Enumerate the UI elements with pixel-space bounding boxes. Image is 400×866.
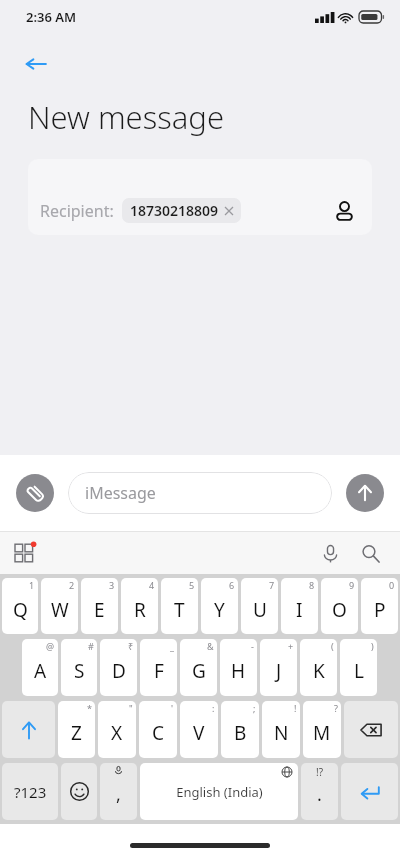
staticText: 5 (189, 579, 195, 591)
staticText: 1 (29, 579, 35, 591)
button[interactable]: ₹ (100, 639, 137, 696)
staticText: A (34, 658, 47, 684)
staticText: E (94, 597, 105, 623)
staticText: U (253, 597, 267, 623)
button[interactable]: , (100, 763, 137, 820)
button[interactable]: + (260, 639, 297, 696)
button[interactable]: & (180, 639, 217, 696)
button[interactable]: iMessage (68, 472, 332, 514)
staticText: _ (170, 640, 174, 652)
staticText: 3 (109, 579, 115, 591)
staticText: J (276, 658, 282, 684)
staticText: Recipient: (40, 200, 114, 222)
button[interactable]: 0 (361, 578, 398, 634)
button[interactable]: ' (139, 701, 177, 758)
staticText: O (332, 597, 347, 623)
button[interactable]: Back (14, 42, 58, 86)
staticText: Z (71, 720, 82, 746)
staticText: 0 (389, 579, 395, 591)
button[interactable]: ( (300, 639, 337, 696)
staticText: S (74, 658, 85, 684)
staticText: N (274, 720, 289, 746)
button[interactable]: ! (262, 701, 300, 758)
button[interactable]: - (220, 639, 257, 696)
button[interactable]: Apps (4, 532, 46, 574)
button[interactable]: 9 (321, 578, 358, 634)
staticText: 7 (269, 579, 275, 591)
button[interactable]: 3 (81, 578, 118, 634)
button[interactable]: 7 (241, 578, 278, 634)
staticText: P (374, 597, 386, 623)
button[interactable]: Search (350, 533, 390, 573)
staticText: New message (28, 96, 225, 138)
staticText: D (112, 658, 126, 684)
staticText: 18730218809 (130, 201, 219, 220)
staticText: 6 (229, 579, 235, 591)
staticText: ₹ (128, 640, 134, 652)
button[interactable]: : (180, 701, 218, 758)
staticText: iMessage (85, 482, 156, 504)
button[interactable]: Voice input (310, 533, 350, 573)
staticText: W (51, 597, 69, 623)
staticText: ; (253, 702, 256, 714)
staticText: * (87, 702, 92, 714)
staticText: # (88, 640, 94, 652)
button[interactable]: 8 (281, 578, 318, 634)
button[interactable]: Add contact (322, 189, 366, 233)
staticText: V (193, 720, 205, 746)
staticText: I (296, 597, 303, 623)
staticText: & (207, 640, 214, 652)
staticText: 8 (309, 579, 315, 591)
staticText: English (India) (176, 783, 263, 801)
staticText: T (174, 597, 185, 623)
button[interactable]: 5 (161, 578, 198, 634)
staticText: Y (214, 597, 225, 623)
button[interactable]: Shift (2, 701, 55, 758)
staticText: 2 (69, 579, 75, 591)
staticText: ) (371, 640, 374, 652)
staticText: + (288, 640, 294, 652)
button[interactable]: ) (340, 639, 377, 696)
staticText: H (231, 658, 246, 684)
staticText: , (116, 782, 121, 807)
button[interactable]: _ (140, 639, 177, 696)
staticText: Q (13, 597, 28, 623)
button[interactable]: Backspace (344, 701, 398, 758)
staticText: G (192, 658, 206, 684)
staticText: X (111, 720, 123, 746)
button[interactable]: 2 (41, 578, 78, 634)
staticText: . (317, 782, 322, 807)
staticText: 2:36 AM (26, 8, 77, 26)
button[interactable]: ; (221, 701, 259, 758)
staticText: 9 (349, 579, 355, 591)
staticText: : (212, 702, 215, 714)
staticText: ' (171, 702, 174, 714)
button[interactable]: Send (346, 474, 384, 512)
button[interactable]: English (India) (140, 763, 298, 820)
button[interactable]: Recipient: (28, 159, 372, 235)
staticText: " (129, 702, 133, 714)
button[interactable]: " (98, 701, 136, 758)
button[interactable]: Emoji (61, 763, 97, 820)
staticText: R (134, 597, 146, 623)
staticText: ?123 (14, 782, 47, 802)
staticText: B (234, 720, 247, 746)
staticText: ? (334, 702, 338, 714)
button[interactable]: !? (301, 763, 338, 820)
staticText: !? (316, 765, 324, 779)
staticText: ! (294, 702, 297, 714)
button[interactable]: 1 (2, 578, 38, 634)
staticText: ( (331, 640, 334, 652)
button[interactable]: # (61, 639, 97, 696)
button[interactable]: @ (22, 639, 58, 696)
button[interactable]: 6 (201, 578, 238, 634)
staticText: - (251, 640, 254, 652)
button[interactable]: * (58, 701, 95, 758)
button[interactable]: 4 (121, 578, 158, 634)
button[interactable]: Attach (16, 474, 54, 512)
staticText: 4 (149, 579, 155, 591)
button[interactable]: ? (303, 701, 341, 758)
staticText: C (152, 720, 165, 746)
button[interactable]: Enter (341, 763, 398, 820)
button[interactable]: Symbols (2, 763, 58, 820)
